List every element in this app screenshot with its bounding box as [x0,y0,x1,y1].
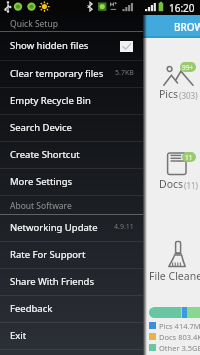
staticText: More Settings [10,175,73,188]
staticText: About Software [10,200,72,212]
staticText: Show hidden files [10,39,89,52]
staticText: Docs 803.4KB [159,332,200,342]
button[interactable]: Empty Recycle Bin [0,88,143,115]
button[interactable]: Search Device [0,115,143,142]
staticText: 11 [185,153,193,162]
staticText: (11) [184,180,198,191]
staticText: Share With Friends [10,275,94,288]
staticText: 99+ [182,63,194,72]
button[interactable]: Networking Update [0,215,143,242]
button[interactable]: Create Shortcut [0,142,143,169]
button[interactable]: File Cleaner [168,240,186,268]
staticText: Clear temporary files [10,67,104,80]
button[interactable]: More Settings [0,169,143,196]
staticText: Rate For Support [10,248,86,261]
staticText: BROWSE [174,20,200,34]
staticText: Pics 414.7MB [159,321,200,331]
staticText: (303) [179,90,198,101]
staticText: Feedback [10,302,53,315]
button[interactable]: Show hidden files [0,32,143,61]
staticText: 16:20 [169,1,195,15]
button[interactable]: Exit [0,323,143,350]
staticText: Other 3.5GB [159,343,200,353]
staticText: Create Shortcut [10,148,80,161]
button[interactable]: Share With Friends [0,269,143,296]
staticText: Docs [159,177,184,191]
button[interactable]: Pics [163,61,196,87]
staticText: Empty Recycle Bin [10,94,91,107]
staticText: Search Device [10,121,72,134]
staticText: Networking Update [10,221,98,234]
staticText: Pics [159,87,179,101]
button[interactable]: Feedback [0,296,143,323]
staticText: 5.7KB [115,68,134,78]
button[interactable]: Docs [167,151,197,176]
staticText: 4.9.11 [114,222,134,232]
staticText: Quick Setup [10,18,58,30]
button[interactable]: Clear temporary files [0,61,143,88]
staticText: Exit [10,329,27,342]
staticText: File Cleaner [149,269,200,283]
button[interactable]: Rate For Support [0,242,143,269]
